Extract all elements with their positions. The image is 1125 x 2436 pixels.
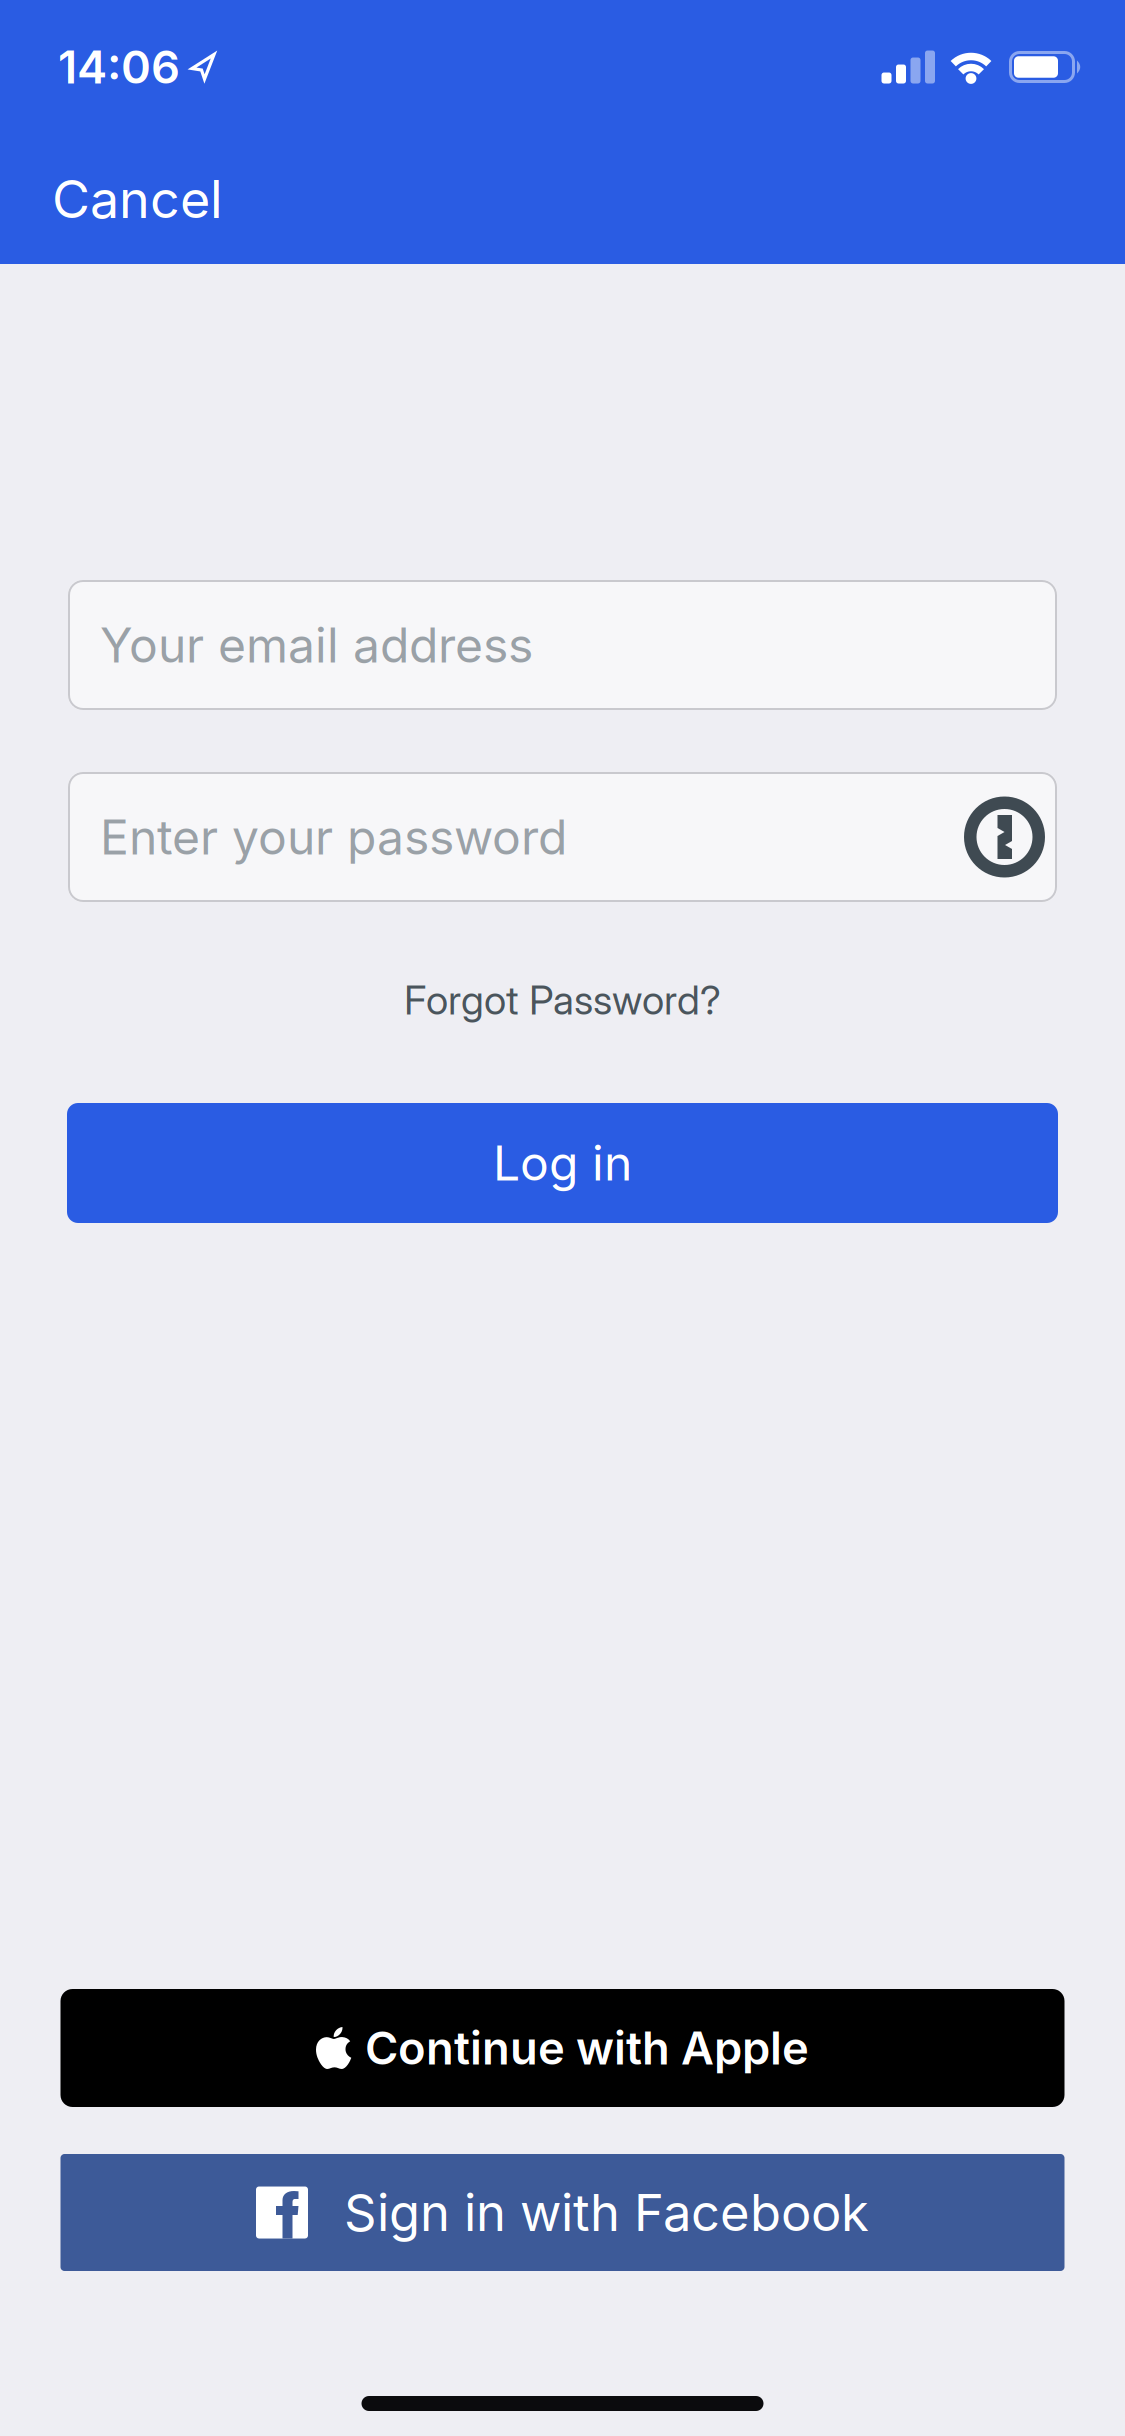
button[interactable]: Log in — [67, 1103, 1058, 1223]
staticText: Forgot Password? — [404, 976, 721, 1024]
button[interactable]: Cancel — [52, 168, 223, 230]
button[interactable]: Continue with Apple — [60, 1989, 1064, 2107]
staticText: Continue with Apple — [365, 2021, 809, 2075]
staticText: Cancel — [52, 168, 223, 230]
button[interactable]: Enter your password — [68, 772, 1057, 902]
staticText: 14:06 — [58, 40, 180, 94]
staticText: Log in — [493, 1135, 632, 1191]
button[interactable]: Sign in with Facebook — [60, 2154, 1064, 2271]
staticText: Sign in with Facebook — [344, 2183, 869, 2242]
button[interactable]: Your email address — [68, 580, 1057, 710]
staticText: Your email address — [100, 617, 533, 673]
button[interactable]: Forgot Password? — [404, 970, 721, 1030]
staticText: Enter your password — [100, 809, 567, 865]
